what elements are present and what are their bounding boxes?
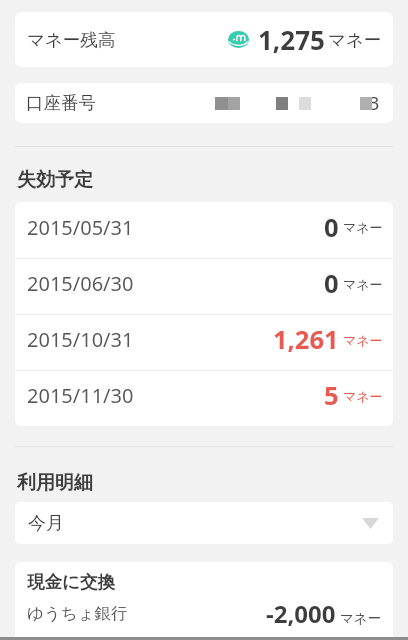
button[interactable]: 現金に交換 (15, 562, 393, 638)
staticText: 口座番号 (26, 92, 96, 114)
staticText: 2015/05/31 (27, 214, 134, 241)
staticText: 1,275 (258, 22, 325, 57)
staticText: マネー (343, 276, 383, 292)
staticText: 5 (324, 378, 339, 413)
button[interactable]: 2015/05/31 (15, 202, 393, 258)
staticText: 2015/10/31 (27, 326, 134, 353)
staticText: 2015/11/30 (27, 382, 134, 409)
staticText: マネー (343, 332, 383, 348)
staticText: マネー (343, 388, 383, 404)
staticText: 利用明細 (17, 471, 93, 495)
staticText: 3 (369, 91, 380, 116)
button[interactable]: 口座番号 (15, 83, 393, 123)
button[interactable]: マネー残高 (15, 12, 393, 67)
button[interactable]: 今月 (15, 502, 393, 544)
button[interactable]: 2015/11/30 (15, 371, 393, 426)
button[interactable]: 2015/06/30 (15, 259, 393, 314)
staticText: マネー (328, 29, 382, 51)
button[interactable]: 2015/10/31 (15, 315, 393, 370)
staticText: 失効予定 (17, 168, 93, 192)
staticText: 現金に交換 (27, 571, 115, 593)
staticText: 0 (324, 266, 339, 301)
other: Money balance (228, 31, 249, 48)
staticText: ゆうちょ銀行 (27, 603, 128, 624)
staticText: 0 (324, 210, 339, 245)
staticText: 1,261 (273, 322, 339, 357)
staticText: マネー残高 (27, 29, 116, 51)
staticText: 2015/06/30 (27, 270, 134, 297)
staticText: マネー (343, 219, 383, 235)
staticText: マネー (340, 610, 382, 627)
staticText: 今月 (28, 512, 64, 535)
staticText: -2,000 (266, 597, 336, 630)
